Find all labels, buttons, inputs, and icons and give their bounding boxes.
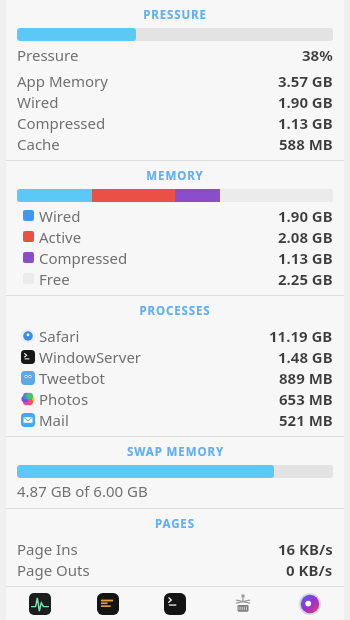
button[interactable]: WindowServer (17, 346, 333, 367)
button[interactable]: Free (17, 268, 333, 289)
button[interactable]: Page Outs (17, 559, 333, 580)
staticText: MEMORY (146, 168, 204, 184)
staticText: Page Outs (17, 560, 90, 580)
button[interactable]: Disk Utility (223, 587, 263, 620)
staticText: 4.87 GB of 6.00 GB (17, 481, 148, 501)
staticText: Page Ins (17, 539, 78, 559)
staticText: 1.90 GB (278, 92, 333, 112)
staticText: 889 MB (279, 368, 333, 388)
staticText: App Memory (17, 71, 108, 91)
button[interactable]: Wired (17, 205, 333, 226)
staticText: Wired (17, 92, 59, 112)
staticText: PAGES (155, 516, 195, 532)
staticText: SWAP MEMORY (127, 444, 224, 460)
staticText: Mail (39, 410, 69, 430)
button[interactable]: Compressed (17, 112, 333, 133)
staticText: 11.19 GB (269, 326, 333, 346)
staticText: WindowServer (39, 347, 142, 367)
staticText: 2.25 GB (278, 269, 333, 289)
staticText: Tweetbot (39, 368, 105, 388)
staticText: Wired (39, 206, 81, 226)
button[interactable]: Tweetbot (17, 367, 333, 388)
staticText: PRESSURE (143, 7, 207, 23)
staticText: Cache (17, 134, 60, 154)
staticText: Photos (39, 389, 89, 409)
staticText: 1.48 GB (278, 347, 333, 367)
staticText: Active (39, 227, 82, 247)
staticText: 1.13 GB (278, 248, 333, 268)
staticText: 653 MB (279, 389, 333, 409)
button[interactable]: Terminal (155, 587, 195, 620)
staticText: Safari (39, 326, 80, 346)
button[interactable]: Cache (17, 133, 333, 154)
staticText: 16 KB/s (278, 539, 333, 559)
staticText: 588 MB (279, 134, 333, 154)
staticText: 521 MB (279, 410, 333, 430)
button[interactable]: Safari (17, 325, 333, 346)
staticText: 1.13 GB (278, 113, 333, 133)
staticText: Pressure (17, 45, 79, 65)
button[interactable]: Watch app (88, 587, 128, 620)
button[interactable]: Photos (17, 388, 333, 409)
staticText: 3.57 GB (278, 71, 333, 91)
button[interactable]: Pressure (17, 44, 333, 65)
staticText: 1.90 GB (278, 206, 333, 226)
staticText: 0 KB/s (286, 560, 333, 580)
button[interactable]: App Memory (17, 70, 333, 91)
button[interactable]: Mail (17, 409, 333, 430)
staticText: Free (39, 269, 70, 289)
button[interactable]: Wired (17, 91, 333, 112)
staticText: 2.08 GB (278, 227, 333, 247)
button[interactable]: Activity Monitor (20, 587, 60, 620)
button[interactable]: Active (17, 226, 333, 247)
button[interactable]: Page Ins (17, 538, 333, 559)
staticText: Compressed (17, 113, 106, 133)
staticText: Compressed (39, 248, 128, 268)
button[interactable]: Compressed (17, 247, 333, 268)
button[interactable]: iStat Menus settings (290, 587, 330, 620)
staticText: PROCESSES (139, 303, 211, 319)
staticText: 38% (302, 45, 333, 65)
